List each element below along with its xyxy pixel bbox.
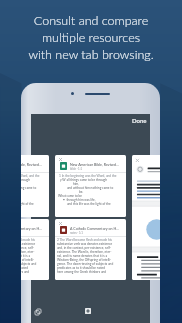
staticText: notes · 1:1 xyxy=(70,231,83,234)
button[interactable]: Close tab xyxy=(55,219,126,280)
staticText: 1 In the beginning was the Word, and the… xyxy=(21,174,47,178)
staticText: Wisdom-Being, the Offspring of intelli- xyxy=(57,258,112,262)
staticText: here among the Greek thinkers and xyxy=(21,270,30,274)
button[interactable] xyxy=(132,155,160,280)
staticText: him, xyxy=(73,182,79,186)
button[interactable]: New tab xyxy=(82,305,94,317)
staticText: and without him nothing came to xyxy=(21,186,37,190)
staticText: 2 The Word became flesh and made his dwe… xyxy=(21,238,47,242)
staticText: existence. The Word is, therefore, eter- xyxy=(21,250,35,254)
staticText: existence. The Word is, therefore, eter- xyxy=(57,250,112,254)
staticText: A Catholic Commentary on H… xyxy=(70,226,119,230)
staticText: gence. The dawn-testing of subjects and xyxy=(21,262,37,266)
staticText: bible · 1:1 xyxy=(70,167,83,170)
staticText: and, in the context, pre-existence, self… xyxy=(57,246,112,250)
staticText: and this life was the light of the xyxy=(67,202,111,206)
staticText: New American Bible, Revised… xyxy=(70,162,119,166)
staticText: What came to be xyxy=(58,194,83,198)
button[interactable]: Tabs xyxy=(32,306,44,318)
staticText: nal, and its name denotes that it is a xyxy=(57,254,107,258)
staticText: Consult and compare multiple resources w… xyxy=(0,13,182,61)
button[interactable]: Close tab xyxy=(59,222,62,225)
staticText: Wisdom-Being, the Offspring of intelli- xyxy=(21,258,35,262)
staticText: here among the Greek thinkers and xyxy=(57,270,107,274)
staticText: be. xyxy=(79,190,84,194)
staticText: nal, and its name denotes that it is a xyxy=(21,254,30,258)
staticText: and, in the context, pre-existence, self… xyxy=(21,246,35,250)
button[interactable]: Close tab xyxy=(21,219,49,280)
staticText: Done xyxy=(132,117,147,124)
button[interactable]: Close tab xyxy=(21,155,49,217)
staticText: A Catholic Commentary on H… xyxy=(21,226,42,230)
staticText: predicates as to it should be noted xyxy=(21,266,29,270)
staticText: New American Bible, Revised… xyxy=(21,162,42,166)
staticText: and this life was the light of the xyxy=(21,202,34,206)
staticText: substantive verb was denotes existence xyxy=(21,242,36,246)
staticText: substantive verb was denotes existence xyxy=(57,242,113,246)
staticText: 1 In the beginning was the Word, and the… xyxy=(59,174,124,178)
staticText: predicates as to it should be noted xyxy=(57,266,106,270)
staticText: 2 The Word became flesh and made his dwe… xyxy=(57,238,124,242)
staticText: and without him nothing came to xyxy=(67,186,114,190)
button[interactable]: Close tab xyxy=(59,158,62,161)
staticText: y W all things came to be through xyxy=(60,178,107,182)
staticText: • through him was life, xyxy=(63,198,96,202)
staticText: y W all things came to be through xyxy=(21,178,30,182)
staticText: gence. The dawn-testing of subjects and xyxy=(57,262,114,266)
button[interactable]: Close tab xyxy=(55,155,126,217)
button[interactable]: Done xyxy=(126,114,150,128)
